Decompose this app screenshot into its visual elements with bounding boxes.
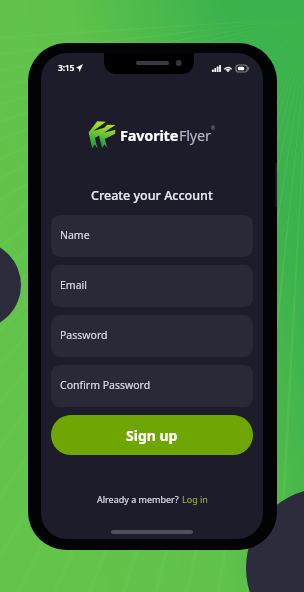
button[interactable]: Confirm Password [51, 365, 253, 407]
staticText: Sign up [126, 426, 178, 445]
button[interactable]: Password [51, 315, 253, 357]
staticText: Log in [182, 493, 208, 505]
staticText: Password [60, 328, 108, 342]
staticText: Email [60, 278, 87, 292]
staticText: Flyer [179, 125, 211, 145]
button[interactable]: Log in [182, 493, 208, 505]
staticText: Name [60, 228, 90, 242]
staticText: Create your Account [91, 187, 213, 204]
button[interactable]: Email [51, 265, 253, 307]
button[interactable]: Name [51, 215, 253, 257]
staticText: Confirm Password [60, 378, 151, 392]
staticText: ® [211, 125, 216, 132]
staticText: 3:15 [58, 62, 75, 74]
staticText: Favorite [120, 125, 179, 145]
button[interactable]: Sign up [51, 415, 253, 455]
staticText: Already a member? [97, 493, 182, 505]
